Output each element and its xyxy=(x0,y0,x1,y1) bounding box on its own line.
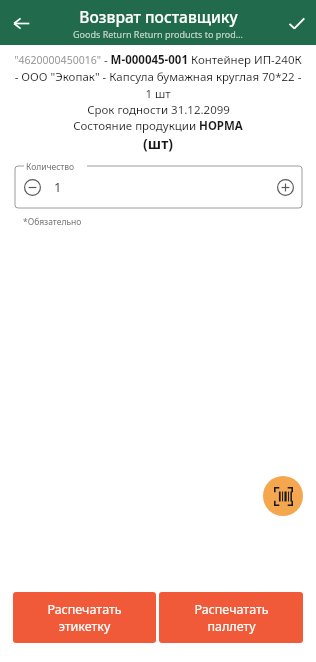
staticText: Срок годности 31.12.2099 xyxy=(87,102,230,118)
button[interactable]: Increase quantity xyxy=(271,173,299,201)
staticText: Распечатать этикетку xyxy=(47,601,122,635)
button[interactable]: Распечатать паллету xyxy=(159,592,303,643)
button[interactable]: Decrease quantity xyxy=(18,173,46,201)
staticText: Распечатать паллету xyxy=(194,601,269,635)
staticText: "4620000450016" - M-000045-001 Контейнер… xyxy=(11,52,305,102)
button[interactable]: Распечатать этикетку xyxy=(13,592,156,643)
staticText: Количество xyxy=(26,161,75,173)
button[interactable]: Scan barcode xyxy=(263,476,303,516)
button[interactable]: Confirm xyxy=(279,6,313,40)
staticText: *Обязательно xyxy=(23,216,82,228)
staticText: Возврат поставщику xyxy=(79,6,238,27)
staticText: (шт) xyxy=(143,134,173,153)
button[interactable]: Back xyxy=(4,6,38,40)
staticText: 1 xyxy=(54,178,62,196)
staticText: Состояние продукции НОРМА xyxy=(73,118,243,134)
staticText: Goods Return Return products to prod… xyxy=(73,28,243,40)
